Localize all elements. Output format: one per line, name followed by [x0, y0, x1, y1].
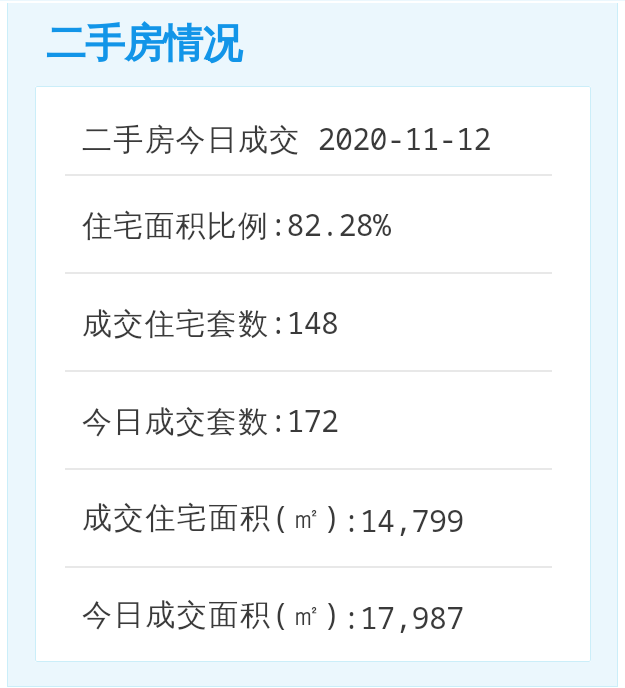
staticText: 成交住宅面积(㎡):14,799	[82, 496, 464, 541]
button[interactable]: 成交住宅面积(㎡):14,799	[35, 470, 591, 566]
button[interactable]: 二手房今日成交 2020-11-12	[35, 86, 591, 174]
button[interactable]: 住宅面积比例:82.28%	[35, 176, 591, 272]
button[interactable]: 今日成交面积(㎡):17,987	[35, 568, 591, 662]
staticText: 今日成交套数:172	[82, 400, 339, 441]
button[interactable]: 成交住宅套数:148	[35, 274, 591, 370]
staticText: 今日成交面积(㎡):17,987	[82, 593, 464, 638]
button[interactable]: 今日成交套数:172	[35, 372, 591, 468]
staticText: 住宅面积比例:82.28%	[82, 204, 391, 245]
staticText: 二手房情况	[46, 18, 242, 68]
staticText: 成交住宅套数:148	[82, 302, 339, 343]
staticText: 二手房今日成交 2020-11-12	[82, 118, 491, 159]
